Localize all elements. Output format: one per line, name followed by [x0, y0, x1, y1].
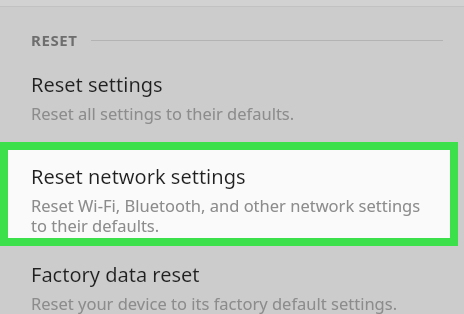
button[interactable]: Reset network settings	[0, 142, 458, 246]
staticText: Reset your device to its factory default…	[31, 292, 398, 314]
button[interactable]: Reset settings	[31, 71, 464, 124]
staticText: Reset all settings to their defaults.	[31, 102, 295, 124]
staticText: RESET	[31, 30, 78, 50]
staticText: Reset Wi-Fi, Bluetooth, and other networ…	[31, 194, 431, 237]
button[interactable]: Factory data reset	[31, 261, 464, 314]
staticText: Reset network settings	[31, 163, 246, 190]
staticText: Reset settings	[31, 71, 163, 98]
staticText: Factory data reset	[31, 261, 200, 288]
